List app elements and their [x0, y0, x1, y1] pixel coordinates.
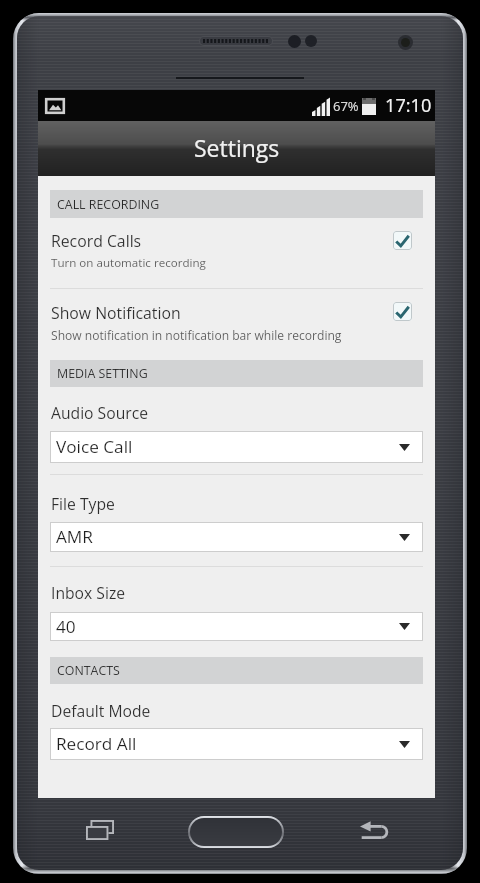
staticText: 40 [56, 615, 76, 638]
staticText: Turn on automatic recording [51, 255, 206, 271]
button[interactable]: 40 [50, 612, 423, 641]
staticText: CALL RECORDING [57, 196, 160, 213]
staticText: Settings [194, 132, 280, 163]
button[interactable]: Voice Call [50, 431, 423, 463]
staticText: 17:10 [385, 93, 432, 118]
staticText: Record Calls [51, 230, 142, 252]
staticText: Voice Call [56, 435, 133, 458]
staticText: Inbox Size [51, 582, 126, 603]
staticText: Show notification in notification bar wh… [51, 327, 342, 343]
staticText: 67% [333, 97, 359, 115]
staticText: File Type [51, 493, 115, 514]
staticText: CONTACTS [57, 662, 120, 679]
staticText: Record All [56, 732, 137, 755]
button[interactable]: Record Calls [38, 226, 435, 288]
staticText: Show Notification [51, 302, 181, 324]
button[interactable]: Record All [50, 728, 423, 760]
button[interactable]: Recent apps [72, 806, 127, 853]
staticText: Default Mode [51, 700, 151, 721]
staticText: AMR [56, 525, 93, 548]
button[interactable]: AMR [50, 522, 423, 552]
button[interactable]: Back [346, 806, 401, 853]
staticText: Audio Source [51, 402, 149, 423]
button[interactable]: Show Notification [38, 298, 435, 360]
button[interactable]: Home [188, 816, 284, 848]
staticText: MEDIA SETTING [57, 365, 148, 382]
